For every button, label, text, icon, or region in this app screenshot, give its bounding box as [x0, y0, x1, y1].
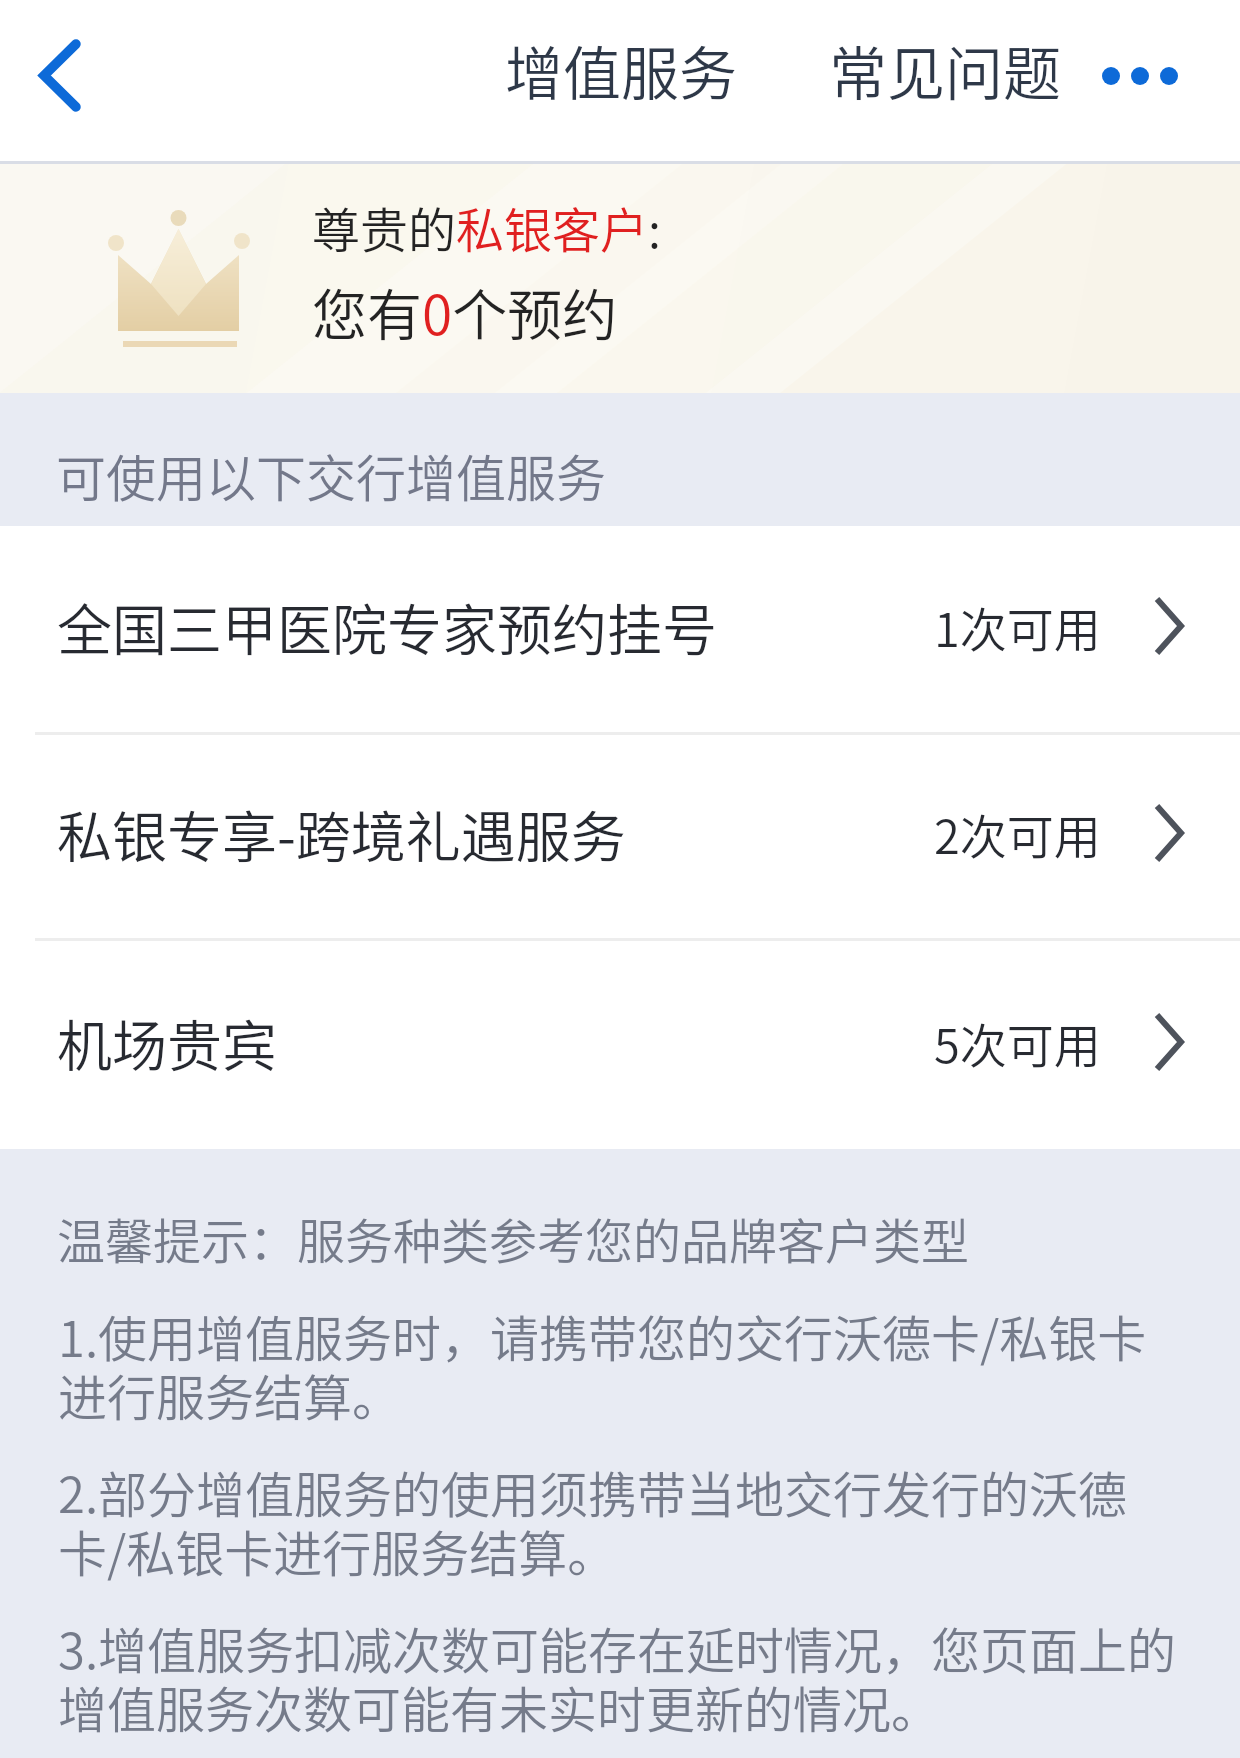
staticText: 机场贵宾: [57, 1002, 278, 1082]
staticText: 您有0个预约: [312, 271, 618, 351]
staticText: 增值服务: [505, 28, 738, 112]
button[interactable]: 机场贵宾: [0, 941, 1240, 1149]
staticText: 5次可用: [934, 1008, 1101, 1076]
staticText: 尊贵的私银客户:: [312, 192, 661, 262]
staticText: 2.部分增值服务的使用须携带当地交行发行的沃德卡/私银卡进行服务结算。: [58, 1466, 1180, 1584]
staticText: 1.使用增值服务时，请携带您的交行沃德卡/私银卡进行服务结算。: [58, 1310, 1180, 1428]
button[interactable]: Back: [10, 27, 110, 123]
staticText: 私银专享-跨境礼遇服务: [57, 793, 626, 873]
staticText: 常见问题: [829, 28, 1062, 112]
button[interactable]: 全国三甲医院专家预约挂号: [0, 526, 1240, 735]
staticText: 1次可用: [934, 592, 1101, 660]
button[interactable]: 私银专享-跨境礼遇服务: [0, 735, 1240, 941]
button[interactable]: 常见问题: [809, 8, 1075, 156]
staticText: 2次可用: [934, 799, 1101, 867]
staticText: 可使用以下交行增值服务: [56, 439, 606, 511]
button[interactable]: 增值服务: [485, 8, 751, 156]
staticText: 全国三甲医院专家预约挂号: [57, 586, 718, 666]
staticText: 3.增值服务扣减次数可能存在延时情况，您页面上的增值服务次数可能有未实时更新的情…: [58, 1622, 1180, 1740]
staticText: 温馨提示：服务种类参考您的品牌客户类型: [57, 1203, 970, 1273]
button[interactable]: More options: [1076, 26, 1204, 126]
